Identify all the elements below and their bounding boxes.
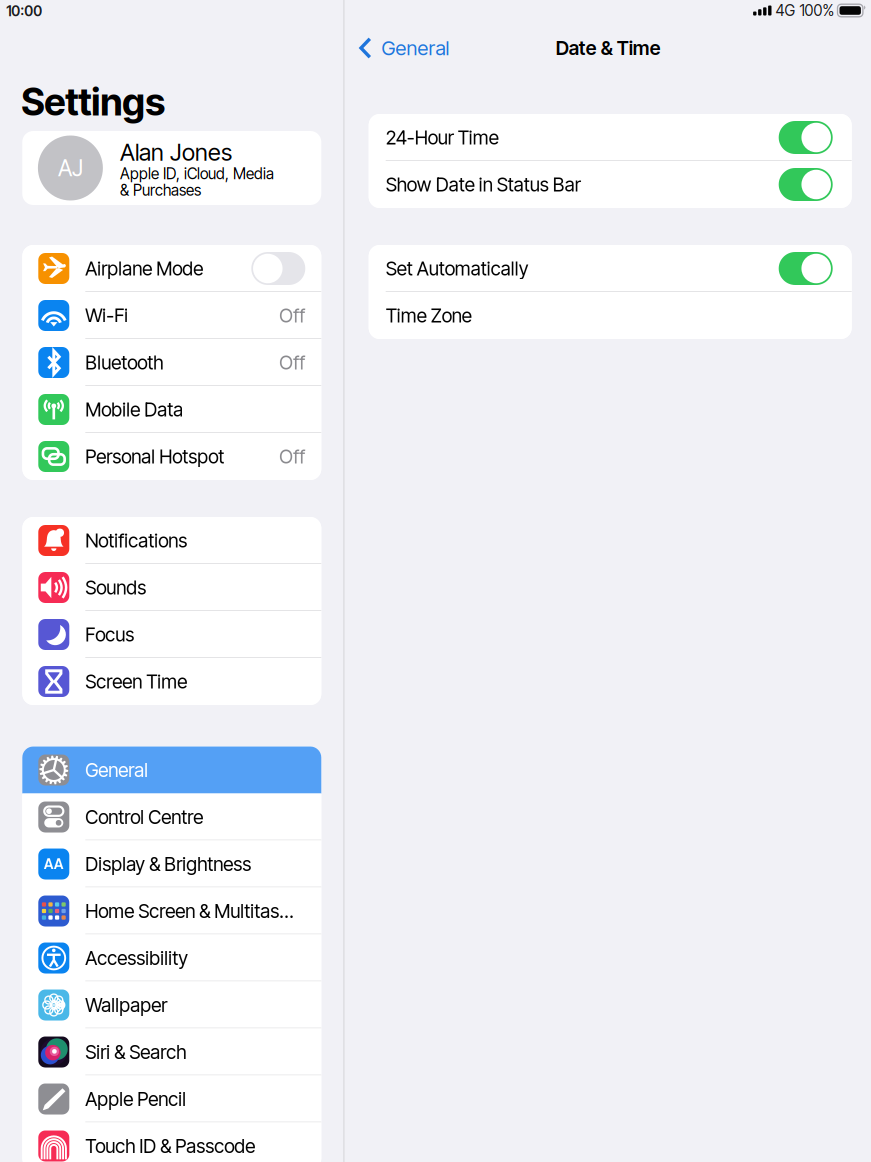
button[interactable]: Mobile Data (22, 386, 321, 433)
button[interactable]: Notifications (22, 517, 321, 564)
staticText: Off (279, 351, 305, 374)
staticText: Date & Time (556, 36, 661, 60)
staticText: & Purchases (120, 181, 201, 199)
button[interactable]: Focus (22, 611, 321, 658)
staticText: Apple ID, iCloud, Media (120, 164, 274, 183)
staticText: Wallpaper (85, 993, 167, 1017)
staticText: Show Date in Status Bar (386, 173, 581, 196)
button[interactable]: General (345, 17, 449, 79)
button[interactable]: Wi-Fi (22, 292, 321, 339)
button[interactable]: General (22, 746, 321, 793)
staticText: Screen Time (85, 670, 187, 693)
button[interactable]: 24-Hour Time (369, 114, 852, 161)
staticText: Apple Pencil (85, 1087, 186, 1111)
staticText: Accessibility (85, 946, 188, 970)
button[interactable]: Airplane Mode (22, 245, 321, 292)
button[interactable]: Show Date in Status Bar (369, 161, 852, 208)
button[interactable]: Personal Hotspot (22, 433, 321, 480)
staticText: Off (279, 304, 305, 327)
button[interactable]: Sounds (22, 564, 321, 611)
staticText: 4G 100% (775, 1, 834, 20)
staticText: AA (44, 855, 64, 873)
button[interactable]: Home Screen & Multitas... (22, 887, 321, 934)
button[interactable]: Bluetooth (22, 339, 321, 386)
staticText: General (85, 758, 148, 782)
button[interactable]: Set Automatically (369, 245, 852, 292)
staticText: Sounds (85, 576, 146, 599)
button[interactable]: AJ (22, 131, 321, 205)
staticText: Alan Jones (120, 138, 232, 166)
staticText: Set Automatically (386, 257, 529, 280)
button[interactable]: Touch ID & Passcode (22, 1122, 321, 1162)
staticText: Wi-Fi (85, 304, 128, 327)
staticText: Touch ID & Passcode (85, 1134, 255, 1158)
staticText: Focus (85, 623, 134, 646)
button[interactable]: Time Zone (369, 292, 852, 339)
button[interactable]: Screen Time (22, 658, 321, 705)
button[interactable]: Wallpaper (22, 981, 321, 1028)
button[interactable]: Control Centre (22, 793, 321, 840)
staticText: Airplane Mode (85, 257, 203, 280)
staticText: Control Centre (85, 805, 203, 829)
button[interactable]: Siri & Search (22, 1028, 321, 1075)
staticText: AJ (58, 154, 83, 182)
staticText: Personal Hotspot (85, 445, 224, 468)
staticText: Siri & Search (85, 1040, 186, 1064)
button[interactable]: Apple Pencil (22, 1075, 321, 1122)
staticText: Bluetooth (85, 351, 163, 374)
staticText: Settings (21, 79, 165, 124)
button[interactable]: AA (22, 840, 321, 887)
staticText: Display & Brightness (85, 852, 251, 876)
button[interactable]: Accessibility (22, 934, 321, 981)
staticText: General (381, 36, 449, 60)
staticText: 10:00 (6, 2, 42, 20)
staticText: Notifications (85, 529, 187, 552)
staticText: Home Screen & Multitas... (85, 899, 294, 923)
staticText: Off (279, 445, 305, 468)
staticText: Mobile Data (85, 398, 183, 421)
staticText: Time Zone (386, 304, 472, 327)
staticText: 24-Hour Time (386, 126, 499, 149)
